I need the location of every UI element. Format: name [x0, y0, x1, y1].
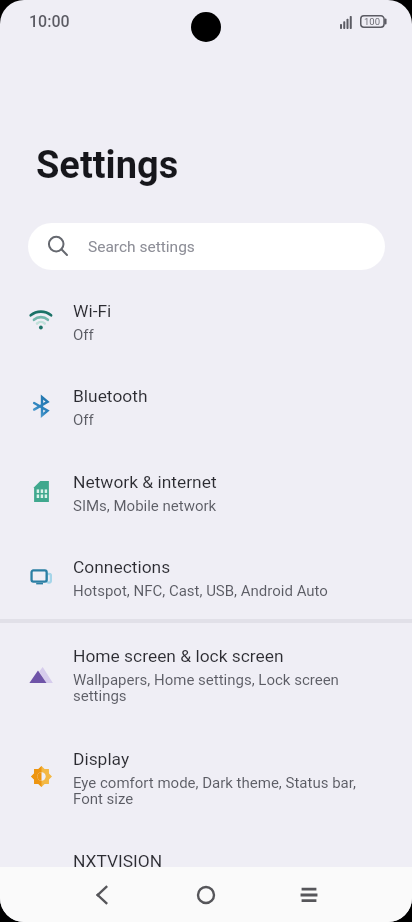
button[interactable]: Connections	[0, 557, 412, 627]
staticText: Settings	[36, 143, 179, 188]
button[interactable]: Display	[0, 749, 412, 819]
staticText: 10:00	[29, 12, 70, 31]
button[interactable]: Wi-Fi	[0, 301, 412, 371]
staticText: Home screen & lock screen	[73, 646, 284, 666]
staticText: Wallpapers, Home settings, Lock screen s…	[73, 671, 360, 705]
staticText: Eye comfort mode, Dark theme, Status bar…	[73, 774, 360, 808]
button[interactable]: Search settings	[28, 223, 385, 270]
staticText: Network & internet	[73, 472, 217, 492]
staticText: Wi-Fi	[73, 301, 112, 321]
staticText: Bluetooth	[73, 386, 148, 406]
staticText: NXTVISION	[73, 851, 163, 871]
staticText: 100	[364, 16, 381, 27]
staticText: Off	[73, 326, 94, 343]
button[interactable]: Home	[172, 867, 240, 922]
button[interactable]: Home screen & lock screen	[0, 646, 412, 716]
button[interactable]: Back	[68, 867, 136, 922]
staticText: Hotspot, NFC, Cast, USB, Android Auto	[73, 582, 328, 599]
staticText: Connections	[73, 557, 171, 577]
button[interactable]: Bluetooth	[0, 386, 412, 456]
staticText: Search settings	[88, 238, 195, 256]
button[interactable]: Recent apps	[275, 867, 343, 922]
staticText: Off	[73, 411, 94, 428]
staticText: Display	[73, 749, 130, 769]
staticText: SIMs, Mobile network	[73, 497, 217, 514]
button[interactable]: NXTVISION	[0, 851, 412, 891]
button[interactable]: Network & internet	[0, 472, 412, 542]
